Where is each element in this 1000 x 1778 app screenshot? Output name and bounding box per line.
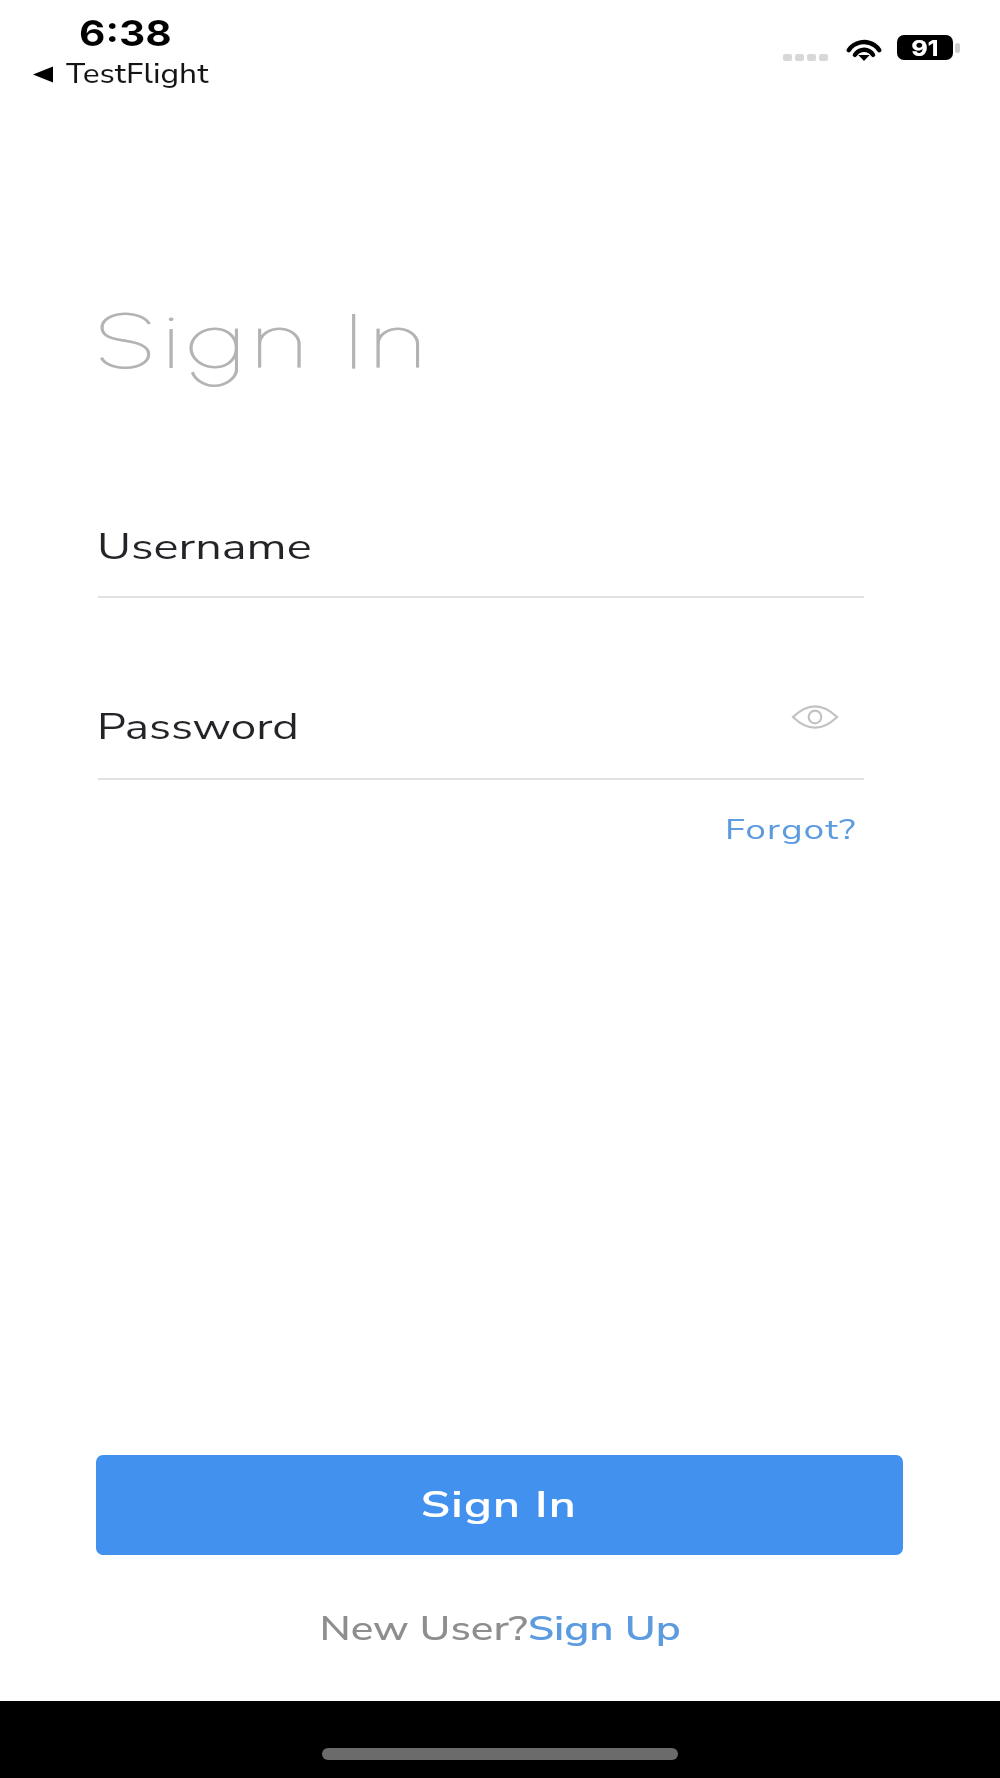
staticText: Password: [97, 703, 299, 752]
staticText: Forgot?: [725, 811, 858, 849]
staticText: Sign In: [421, 1481, 578, 1530]
button[interactable]: Show password: [789, 691, 841, 743]
button[interactable]: Forgot?: [725, 811, 827, 849]
staticText: TestFlight: [66, 56, 209, 93]
staticText: Sign In: [95, 294, 432, 388]
button[interactable]: New User?Sign Up: [359, 1607, 642, 1652]
staticText: 91: [911, 35, 939, 60]
staticText: Username: [97, 523, 313, 572]
button[interactable]: Sign In: [96, 1455, 903, 1555]
staticText: New User?Sign Up: [319, 1607, 682, 1652]
staticText: 6:38: [79, 11, 173, 55]
